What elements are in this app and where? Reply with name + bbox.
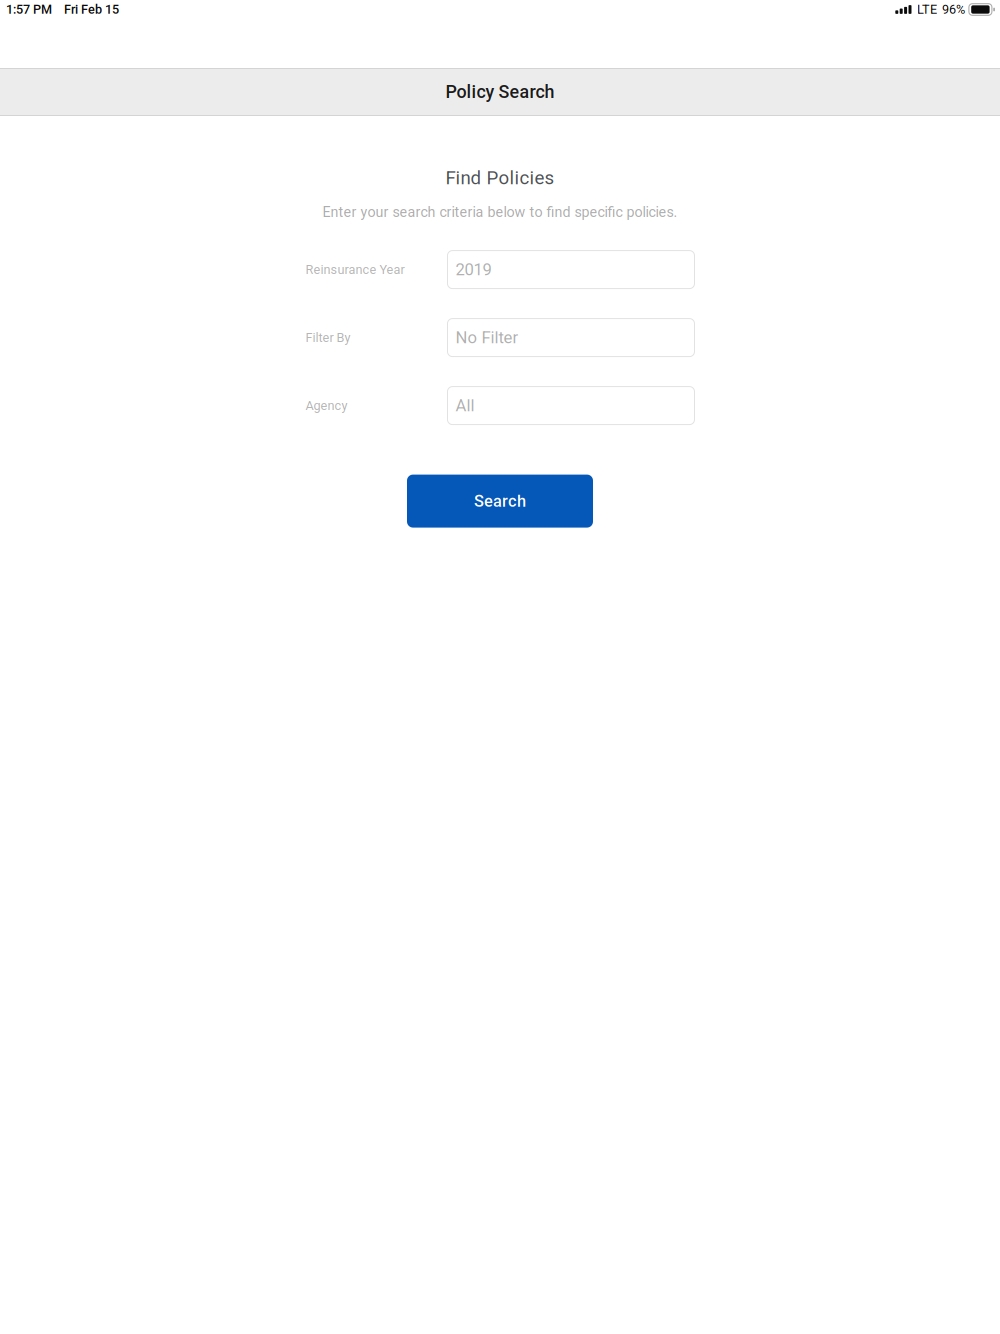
staticText: 2019 [455,260,491,279]
staticText: LTE [917,2,937,17]
staticText: All [455,396,474,415]
staticText: 1:57 PM [6,2,52,17]
staticText: Filter By [305,330,350,345]
button[interactable]: 2019 [447,251,694,289]
staticText: Fri Feb 15 [64,2,119,17]
button[interactable]: All [447,387,694,425]
staticText: Search [474,491,526,511]
staticText: Agency [305,398,347,413]
staticText: No Filter [455,328,518,347]
button[interactable]: Search [407,475,593,528]
staticText: 96% [942,2,965,17]
button[interactable]: No Filter [447,319,694,357]
staticText: Policy Search [445,81,554,102]
staticText: Find Policies [445,167,554,189]
staticText: Reinsurance Year [305,262,404,277]
staticText: Enter your search criteria below to find… [322,204,677,221]
